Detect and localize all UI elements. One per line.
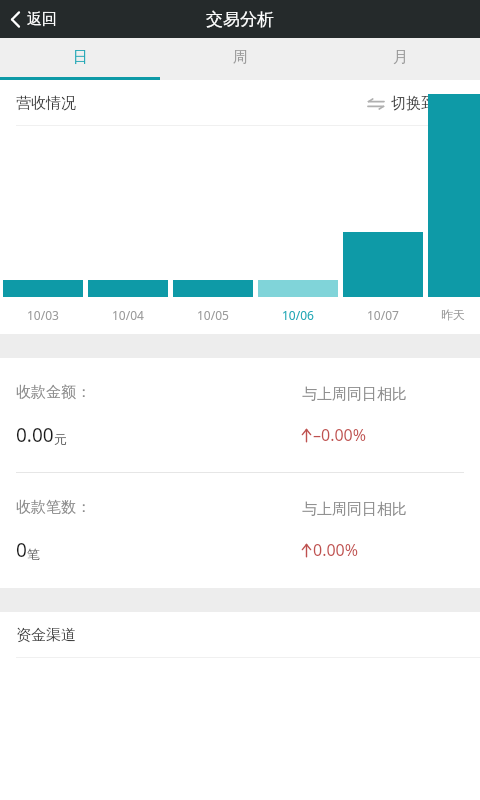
staticText: –0.00% <box>313 424 367 446</box>
staticText: 月 <box>393 48 408 67</box>
staticText: 10/03 <box>27 307 59 323</box>
staticText: 10/04 <box>112 307 144 323</box>
staticText: 0.00% <box>313 539 359 561</box>
button[interactable]: 返回 <box>0 5 73 34</box>
staticText: 交易分析 <box>206 9 274 30</box>
staticText: 10/06 <box>282 307 314 323</box>
other: 返回 <box>10 11 21 28</box>
staticText: 0.00 <box>16 422 54 448</box>
staticText: 收款金额： <box>16 383 91 402</box>
button[interactable]: 月 <box>320 38 480 80</box>
button[interactable]: 资金渠道 <box>0 612 480 658</box>
staticText: 10/07 <box>367 307 399 323</box>
button[interactable]: 日 <box>0 38 160 80</box>
staticText: 0 <box>16 537 27 563</box>
staticText: 日 <box>73 48 88 67</box>
button[interactable]: 切换到退款 <box>357 88 480 119</box>
staticText: 收款笔数： <box>16 498 91 517</box>
button[interactable]: 周 <box>160 38 320 80</box>
staticText: 笔 <box>27 546 40 562</box>
staticText: 资金渠道 <box>16 626 76 645</box>
staticText: 昨天 <box>441 307 465 322</box>
other: 切换到退款 <box>367 98 385 110</box>
staticText: 营收情况 <box>16 94 76 113</box>
button[interactable]: 收款笔数： <box>0 473 480 588</box>
staticText: 与上周同日相比 <box>302 385 407 404</box>
staticText: 元 <box>54 431 67 447</box>
staticText: 切换到退款 <box>391 94 466 113</box>
staticText: 10/05 <box>197 307 229 323</box>
button[interactable]: 收款金额： <box>0 358 480 473</box>
staticText: 返回 <box>27 10 57 29</box>
staticText: 与上周同日相比 <box>302 500 407 519</box>
staticText: 周 <box>233 48 248 67</box>
